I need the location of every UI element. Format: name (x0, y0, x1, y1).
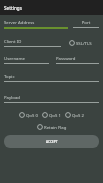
staticText: QoS 2 (72, 112, 84, 118)
button[interactable]: Topic (4, 73, 99, 82)
button[interactable]: Retain Flag (37, 124, 67, 130)
staticText: Topic (4, 73, 99, 79)
button[interactable]: QoS 1 (42, 112, 61, 118)
button[interactable]: Client ID (4, 38, 61, 47)
staticText: Username (4, 55, 49, 61)
staticText: Retain Flag (44, 124, 67, 130)
button[interactable]: Payload (4, 94, 99, 103)
staticText: Payload (4, 94, 99, 100)
staticText: ACCEPT (46, 140, 58, 144)
staticText: Password (56, 55, 99, 61)
staticText: Settings (4, 5, 22, 11)
staticText: Port (73, 19, 99, 25)
staticText: QoS 0 (26, 112, 38, 118)
button[interactable]: ACCEPT (4, 135, 99, 148)
staticText: SSL/TLS (76, 40, 92, 46)
button[interactable]: Password (56, 55, 99, 64)
staticText: Client ID (4, 38, 61, 44)
button[interactable]: Username (4, 55, 49, 64)
button[interactable]: SSL/TLS (69, 40, 92, 46)
button[interactable]: Settings (0, 0, 103, 15)
staticText: Server Address (4, 19, 68, 25)
button[interactable]: Server Address (4, 19, 68, 29)
staticText: QoS 1 (49, 112, 61, 118)
button[interactable]: QoS 2 (65, 112, 84, 118)
button[interactable]: Port (73, 19, 99, 28)
button[interactable]: QoS 0 (19, 112, 38, 118)
